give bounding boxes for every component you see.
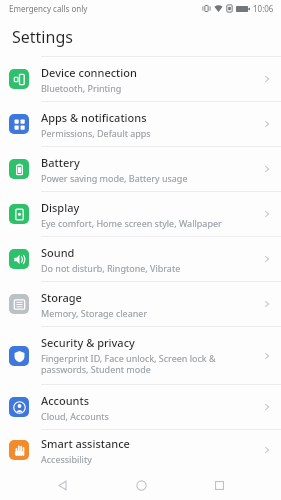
staticText: Eye comfort, Home screen style, Wallpape… [41,217,222,229]
button[interactable]: Accounts [0,385,281,429]
button[interactable]: Storage [0,282,281,326]
staticText: Security & privacy [41,335,135,350]
staticText: Power saving mode, Battery usage [41,172,188,184]
button[interactable]: Recent apps [202,470,236,500]
button[interactable]: Apps & notifications [0,102,281,146]
staticText: Accounts [41,393,90,408]
staticText: Settings [12,26,73,48]
button[interactable]: Sound [0,237,281,281]
staticText: Battery [41,155,80,170]
button[interactable]: Device connection [0,57,281,101]
button[interactable]: Smart assistance [0,430,281,470]
staticText: Emergency calls only [9,3,88,14]
staticText: Fingerprint ID, Face unlock, Screen lock… [41,352,216,376]
button[interactable]: Back [45,470,79,500]
button[interactable]: Battery [0,147,281,191]
staticText: Accessibility [41,453,92,465]
staticText: Sound [41,245,75,260]
staticText: Cloud, Accounts [41,410,109,422]
staticText: Apps & notifications [41,110,147,125]
button[interactable]: Home [124,470,158,500]
staticText: Smart assistance [41,436,130,451]
staticText: Do not disturb, Ringtone, Vibrate [41,262,181,274]
staticText: Permissions, Default apps [41,127,151,139]
staticText: Display [41,200,80,215]
staticText: 10:06 [253,3,274,14]
button[interactable]: Display [0,192,281,236]
staticText: Memory, Storage cleaner [41,307,148,319]
staticText: Storage [41,290,82,305]
staticText: Bluetooth, Printing [41,82,122,94]
button[interactable]: Security & privacy [0,327,281,384]
staticText: Device connection [41,65,137,80]
